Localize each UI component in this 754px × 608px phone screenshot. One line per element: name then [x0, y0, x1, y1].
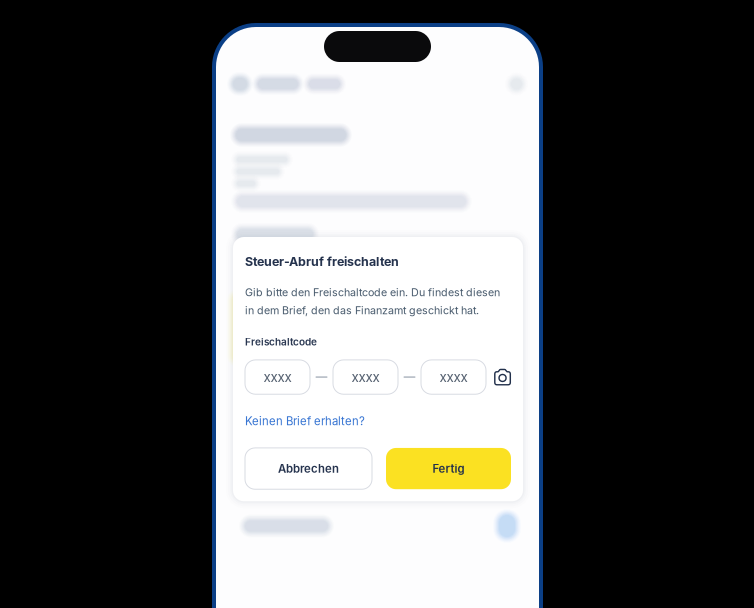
staticText: xxxx [263, 369, 291, 385]
button[interactable]: Keinen Brief erhalten? [245, 414, 365, 428]
button[interactable]: Fertig [386, 448, 511, 489]
staticText: Fertig [432, 462, 464, 475]
button[interactable]: Freischaltcode scannen [494, 369, 511, 386]
button[interactable]: Abbrechen [245, 448, 372, 489]
staticText: Steuer-Abruf freischalten [245, 254, 399, 269]
staticText: Gib bitte den Freischaltcode ein. Du fin… [245, 286, 500, 317]
staticText: xxxx [439, 369, 467, 385]
staticText: Abbrechen [278, 462, 339, 475]
staticText: Freischaltcode [245, 336, 317, 348]
staticText: Keinen Brief erhalten? [245, 414, 365, 428]
staticText: xxxx [351, 369, 379, 385]
